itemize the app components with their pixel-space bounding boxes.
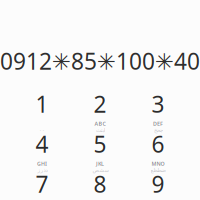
staticText: 1 [35,89,48,119]
button[interactable]: 7 [14,174,70,200]
staticText: 7 [35,169,48,199]
staticText: DEF [153,120,163,127]
button[interactable]: 3 [130,94,186,128]
staticText: GHI [37,160,47,167]
staticText: ابتث [95,127,104,133]
button[interactable]: 9 [130,174,186,200]
staticText: سشص [92,167,108,173]
staticText: 0912✳85✳100✳40 [0,46,200,76]
staticText: JKL [96,160,104,167]
staticText: MNO [151,160,164,167]
staticText: ABC [94,120,105,127]
button[interactable]: 5 [72,134,128,168]
staticText: 9 [151,169,164,199]
button[interactable]: 6 [130,134,186,168]
staticText: دذرز [37,167,47,173]
staticText: ٠٠ [39,127,45,133]
staticText: 8 [93,169,106,199]
staticText: 5 [93,129,106,159]
staticText: 3 [151,89,164,119]
button[interactable]: 2 [72,94,128,128]
staticText: جحخ [153,127,162,133]
staticText: 4 [35,129,48,159]
button[interactable]: 1 [14,94,70,128]
staticText: 2 [93,89,106,119]
staticText: ضطظع [150,167,166,173]
button[interactable]: 4 [14,134,70,168]
staticText: 6 [151,129,164,159]
button[interactable]: 8 [72,174,128,200]
